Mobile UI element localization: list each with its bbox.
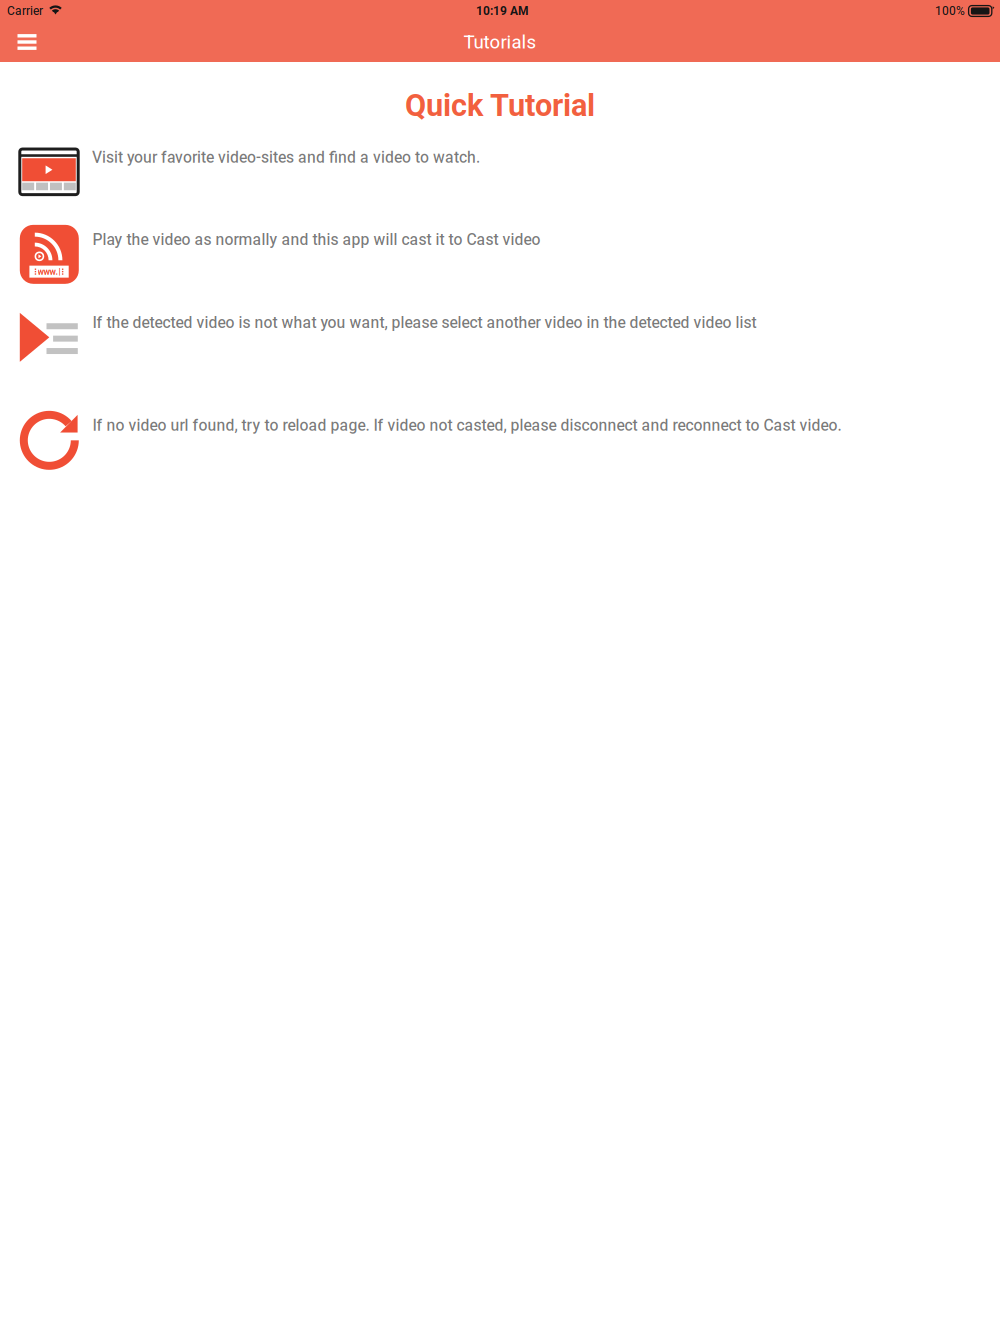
staticText: If the detected video is not what you wa… [93, 313, 757, 332]
staticText: 10:19 AM [476, 4, 529, 18]
staticText: Visit your favorite video-sites and find… [92, 148, 480, 167]
staticText: Play the video as normally and this app … [93, 230, 541, 249]
button[interactable]: Menu [8, 22, 46, 62]
staticText: Quick Tutorial [405, 87, 595, 123]
staticText: If no video url found, try to reload pag… [93, 416, 842, 434]
staticText: Carrier [7, 4, 43, 18]
staticText: Tutorials [463, 31, 536, 53]
staticText: 100% [935, 4, 965, 18]
staticText: www.| [37, 266, 60, 277]
